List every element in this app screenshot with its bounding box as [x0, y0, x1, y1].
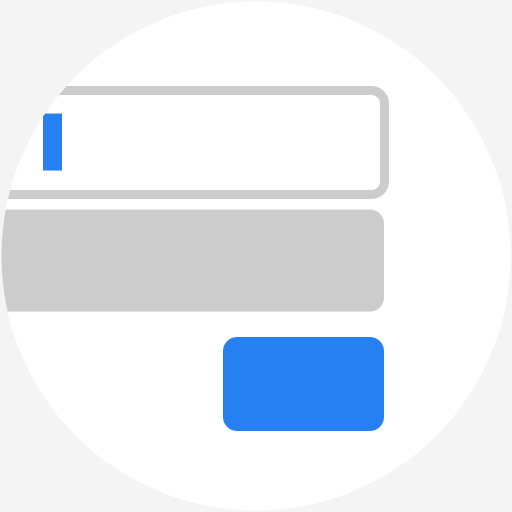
button[interactable]: Text field: [0, 90, 384, 194]
button[interactable]: Submit: [223, 337, 384, 431]
button[interactable]: Placeholder row: [0, 209, 384, 311]
